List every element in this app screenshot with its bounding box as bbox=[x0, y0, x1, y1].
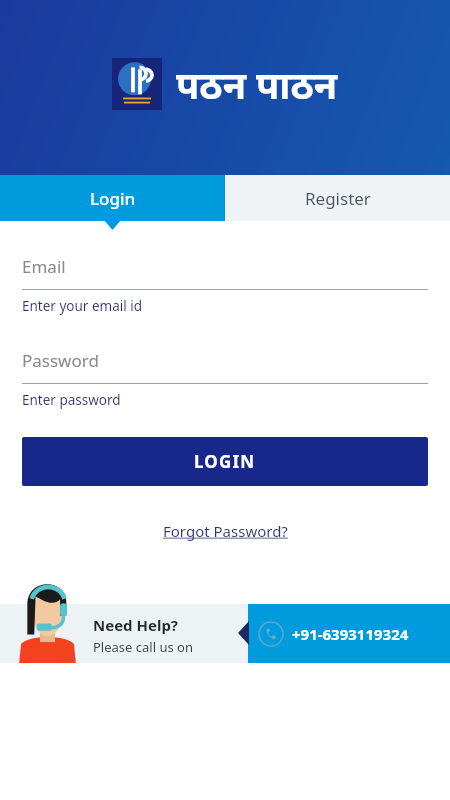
staticText: +91-6393119324 bbox=[292, 624, 409, 644]
other: Call support bbox=[258, 621, 284, 647]
staticText: Register bbox=[305, 187, 371, 210]
button[interactable]: Password bbox=[22, 349, 428, 409]
button[interactable]: Forgot Password? bbox=[159, 517, 292, 545]
staticText: पठन पाठन bbox=[176, 58, 338, 110]
staticText: Email bbox=[22, 255, 66, 278]
button[interactable]: Email bbox=[22, 255, 428, 315]
staticText: Enter password bbox=[22, 391, 121, 409]
staticText: Password bbox=[22, 349, 99, 372]
staticText: Please call us on bbox=[93, 638, 193, 656]
button[interactable]: Register bbox=[225, 175, 450, 221]
staticText: Login bbox=[90, 187, 136, 210]
staticText: LOGIN bbox=[194, 450, 256, 473]
staticText: Need Help? bbox=[93, 615, 179, 635]
staticText: Enter your email id bbox=[22, 297, 142, 315]
button[interactable]: LOGIN bbox=[22, 437, 428, 486]
button[interactable]: Call support bbox=[248, 604, 450, 663]
staticText: Forgot Password? bbox=[163, 521, 288, 541]
button[interactable]: Login bbox=[0, 175, 225, 221]
